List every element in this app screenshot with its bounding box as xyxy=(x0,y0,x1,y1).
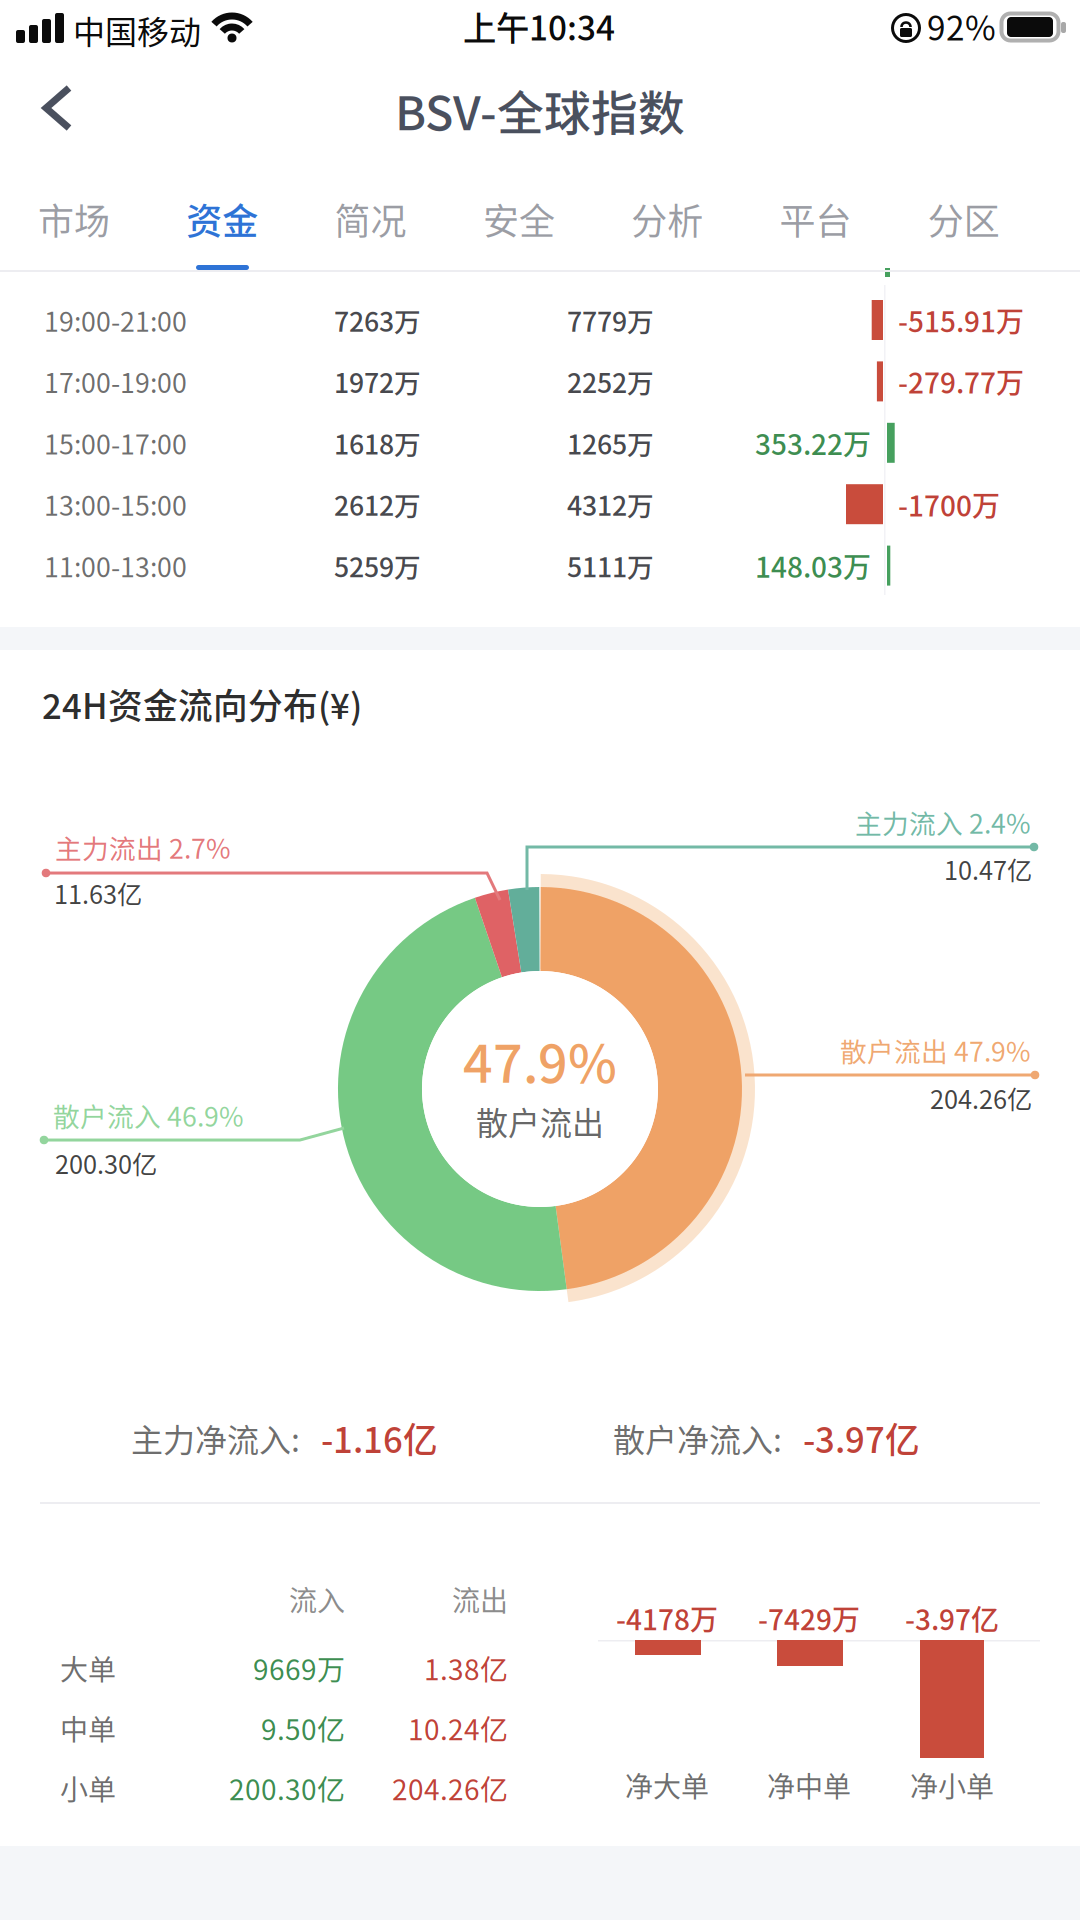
staticText: 分析 xyxy=(631,193,703,245)
staticText: 47.9% xyxy=(463,1022,617,1098)
staticText: 资金 xyxy=(186,193,258,245)
staticText: 1.38亿 xyxy=(424,1648,508,1688)
staticText: 中国移动 xyxy=(73,7,201,53)
staticText: -3.97亿 xyxy=(905,1598,999,1638)
staticText: 353.22万 xyxy=(755,422,871,463)
staticText: 5111万 xyxy=(567,546,654,585)
staticText: 200.30亿 xyxy=(229,1768,345,1808)
staticText: 1265万 xyxy=(567,423,654,462)
button[interactable]: 平台 xyxy=(0,0,1080,1920)
staticText: 主力流入 2.4% xyxy=(855,803,1031,841)
staticText: 5259万 xyxy=(334,546,421,585)
staticText: 分区 xyxy=(928,193,1000,245)
staticText: 11:00-13:00 xyxy=(44,546,187,585)
staticText: 散户净流入: xyxy=(613,1415,782,1461)
staticText: BSV-全球指数 xyxy=(395,76,685,144)
staticText: 主力净流入: xyxy=(131,1415,300,1461)
staticText: 安全 xyxy=(483,193,555,245)
staticText: 148.03万 xyxy=(755,545,871,586)
staticText: -515.91万 xyxy=(898,300,1024,340)
staticText: -7429万 xyxy=(758,1598,860,1638)
staticText: 4312万 xyxy=(567,485,654,523)
staticText: 简况 xyxy=(335,193,407,245)
staticText: 7779万 xyxy=(567,301,654,339)
staticText: 204.26亿 xyxy=(930,1080,1032,1116)
staticText: 13:00-15:00 xyxy=(44,485,187,523)
staticText: 17:00-19:00 xyxy=(44,362,187,401)
button[interactable]: 分析 xyxy=(0,0,1080,1920)
staticText: 10.24亿 xyxy=(408,1708,508,1748)
staticText: -279.77万 xyxy=(898,361,1024,402)
staticText: 19:00-21:00 xyxy=(44,301,187,339)
staticText: -4178万 xyxy=(616,1598,718,1638)
staticText: 平台 xyxy=(779,193,851,245)
button[interactable]: 安全 xyxy=(0,0,1080,1920)
staticText: 200.30亿 xyxy=(55,1145,157,1181)
staticText: 大单 xyxy=(60,1648,116,1688)
staticText: 9.50亿 xyxy=(261,1708,345,1748)
staticText: 11.63亿 xyxy=(54,875,142,911)
staticText: 204.26亿 xyxy=(392,1768,508,1808)
staticText: 7263万 xyxy=(334,301,421,339)
staticText: -1700万 xyxy=(898,484,1000,524)
staticText: 净大单 xyxy=(625,1765,709,1805)
staticText: 主力流出 2.7% xyxy=(55,828,231,866)
staticText: 9669万 xyxy=(253,1648,345,1688)
staticText: 小单 xyxy=(60,1768,116,1808)
staticText: 散户流出 xyxy=(476,1098,604,1144)
button[interactable]: Back xyxy=(0,0,1080,1920)
staticText: 净小单 xyxy=(910,1765,994,1805)
staticText: 1972万 xyxy=(334,362,421,401)
staticText: 市场 xyxy=(38,193,110,245)
staticText: 散户流出 47.9% xyxy=(840,1031,1031,1069)
button[interactable]: 分区 xyxy=(0,0,1080,1920)
staticText: -1.16亿 xyxy=(321,1413,438,1463)
staticText: 92% xyxy=(927,2,996,50)
staticText: 1618万 xyxy=(334,423,421,462)
staticText: 流出 xyxy=(452,1579,508,1619)
staticText: 净中单 xyxy=(767,1765,851,1805)
staticText: 散户流入 46.9% xyxy=(53,1096,244,1134)
staticText: 24H资金流向分布(¥) xyxy=(42,679,362,729)
button[interactable]: 市场 xyxy=(0,0,1080,1920)
staticText: 上午10:34 xyxy=(463,2,615,50)
staticText: 15:00-17:00 xyxy=(44,423,187,462)
staticText: 2612万 xyxy=(334,485,421,523)
staticText: -3.97亿 xyxy=(803,1413,920,1463)
button[interactable]: 资金 xyxy=(0,0,1080,1920)
staticText: 2252万 xyxy=(567,362,654,401)
staticText: 中单 xyxy=(60,1708,116,1748)
staticText: 流入 xyxy=(289,1579,345,1619)
staticText: 10.47亿 xyxy=(944,851,1032,887)
button[interactable]: 简况 xyxy=(0,0,1080,1920)
